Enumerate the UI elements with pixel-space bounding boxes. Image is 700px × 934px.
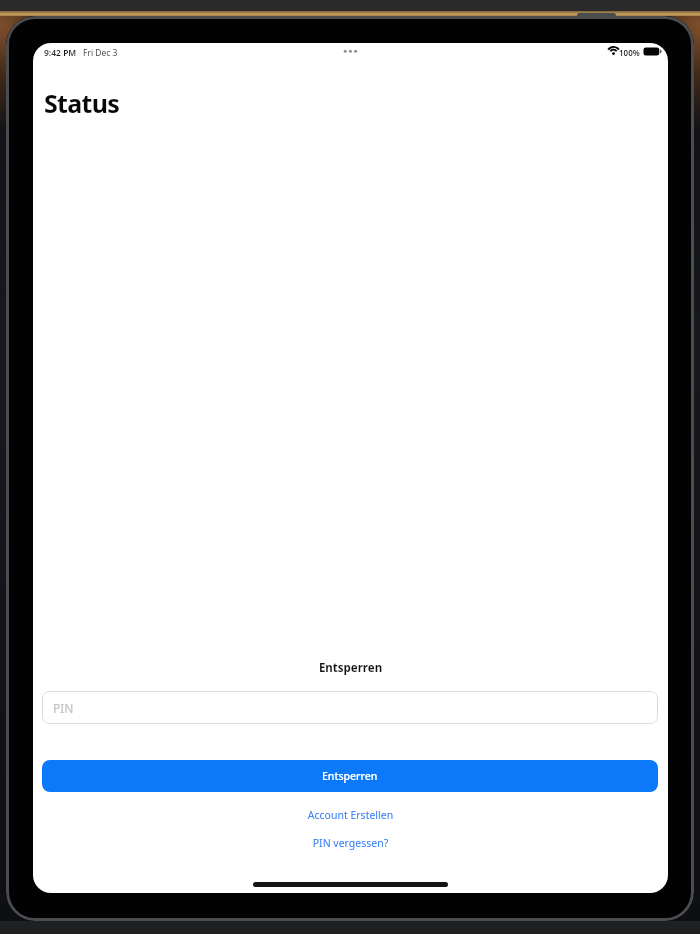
staticText: 9:42 PM: [44, 47, 77, 59]
staticText: Status: [44, 86, 120, 120]
staticText: Fri Dec 3: [83, 47, 118, 59]
staticText: Account Erstellen: [33, 808, 668, 822]
staticText: PIN vergessen?: [33, 836, 668, 850]
staticText: Entsperren: [33, 660, 668, 676]
staticText: PIN: [53, 700, 74, 716]
staticText: 100%: [619, 47, 640, 58]
staticText: Entsperren: [322, 769, 378, 783]
